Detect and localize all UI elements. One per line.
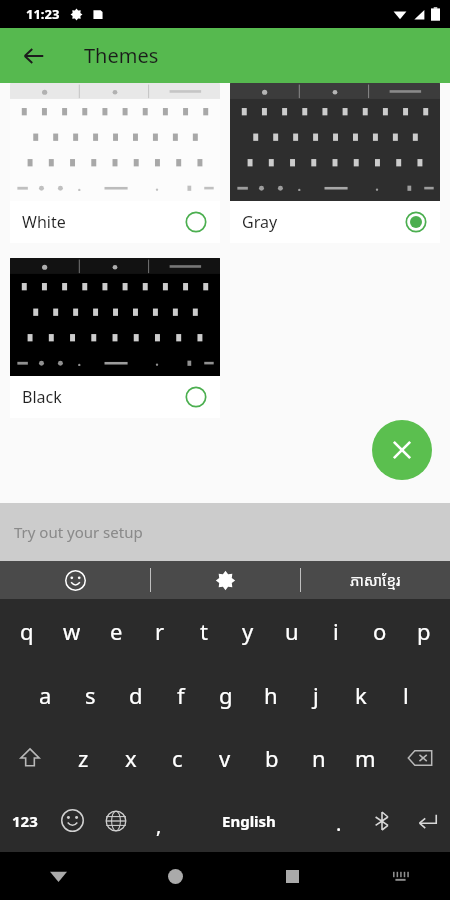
button[interactable]: Change language <box>94 789 138 852</box>
staticText: x <box>125 743 137 773</box>
button[interactable]: Bluetooth <box>360 789 404 852</box>
staticText: Black <box>22 386 62 408</box>
button[interactable]: l <box>383 663 428 726</box>
button[interactable]: j <box>293 663 338 726</box>
staticText: White <box>22 211 66 233</box>
staticText: w <box>63 616 81 646</box>
button[interactable]: v <box>201 726 248 789</box>
button[interactable]: Switch keyboard <box>351 852 450 900</box>
button[interactable]: s <box>68 663 113 726</box>
staticText: o <box>373 616 387 646</box>
staticText: Gray <box>242 211 278 233</box>
staticText: Try out your setup <box>14 522 143 542</box>
button[interactable]: g <box>203 663 248 726</box>
button[interactable]: Emoji <box>50 789 94 852</box>
button[interactable]: c <box>154 726 201 789</box>
button[interactable]: i <box>314 599 358 663</box>
staticText: p <box>417 616 431 646</box>
button[interactable]: Try out your setup <box>0 503 450 561</box>
button[interactable]: h <box>248 663 293 726</box>
staticText: . <box>336 810 342 837</box>
button[interactable]: u <box>270 599 314 663</box>
button[interactable]: r <box>138 599 182 663</box>
button[interactable]: Back <box>0 852 117 900</box>
staticText: n <box>312 743 326 773</box>
button[interactable]: f <box>158 663 203 726</box>
staticText: k <box>355 680 367 710</box>
staticText: 11:23 <box>26 5 60 23</box>
button[interactable]: o <box>358 599 402 663</box>
button[interactable]: White <box>10 83 220 243</box>
button[interactable]: Backspace <box>389 726 450 789</box>
button[interactable]: t <box>182 599 226 663</box>
staticText: z <box>78 743 89 773</box>
staticText: b <box>265 743 279 773</box>
button[interactable]: y <box>226 599 270 663</box>
button[interactable]: Shift <box>0 726 60 789</box>
staticText: r <box>155 616 165 646</box>
button[interactable]: Emoji <box>0 561 150 599</box>
button[interactable]: q <box>4 599 49 663</box>
button[interactable]: d <box>113 663 158 726</box>
staticText: u <box>285 616 299 646</box>
button[interactable]: Home <box>117 852 234 900</box>
staticText: f <box>177 680 185 710</box>
button[interactable]: English <box>180 789 318 852</box>
staticText: , <box>156 812 162 839</box>
staticText: v <box>219 743 231 773</box>
button[interactable]: Recent apps <box>234 852 351 900</box>
button[interactable]: Back <box>14 36 54 76</box>
button[interactable]: Close <box>372 420 432 480</box>
button[interactable]: e <box>94 599 138 663</box>
staticText: y <box>242 616 254 646</box>
staticText: 123 <box>12 811 38 831</box>
staticText: e <box>110 616 123 646</box>
button[interactable]: a <box>22 663 68 726</box>
button[interactable]: ភាសាខ្មែរ <box>301 561 450 599</box>
staticText: j <box>313 680 319 710</box>
staticText: l <box>403 680 409 710</box>
staticText: Themes <box>84 42 159 69</box>
button[interactable]: p <box>402 599 446 663</box>
staticText: m <box>355 743 376 773</box>
staticText: t <box>200 616 208 646</box>
staticText: d <box>129 680 143 710</box>
staticText: English <box>222 811 276 831</box>
button[interactable]: m <box>342 726 389 789</box>
staticText: c <box>172 743 183 773</box>
button[interactable]: 123 <box>0 789 50 852</box>
staticText: h <box>264 680 278 710</box>
button[interactable]: , <box>138 789 180 852</box>
button[interactable]: b <box>248 726 295 789</box>
button[interactable]: z <box>60 726 107 789</box>
staticText: ភាសាខ្មែរ <box>350 570 401 590</box>
button[interactable]: . <box>318 789 360 852</box>
button[interactable]: Enter <box>404 789 450 852</box>
staticText: q <box>20 616 34 646</box>
button[interactable]: x <box>107 726 154 789</box>
button[interactable]: n <box>295 726 342 789</box>
button[interactable]: Settings <box>151 561 300 599</box>
staticText: s <box>85 680 96 710</box>
button[interactable]: Gray <box>230 83 440 243</box>
staticText: i <box>333 616 339 646</box>
button[interactable]: w <box>49 599 94 663</box>
staticText: a <box>39 680 52 710</box>
staticText: g <box>219 680 233 710</box>
button[interactable]: Black <box>10 258 220 418</box>
button[interactable]: k <box>338 663 383 726</box>
